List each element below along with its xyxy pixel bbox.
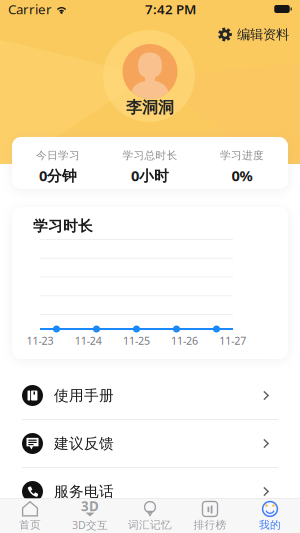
button[interactable]: 词汇记忆 — [120, 499, 180, 533]
staticText: 11-25 — [123, 333, 150, 348]
staticText: 学习时长 — [33, 217, 93, 235]
button[interactable]: 排行榜 — [180, 499, 240, 533]
button[interactable]: 建议反馈 — [12, 420, 288, 467]
staticText: 11-27 — [219, 333, 246, 348]
button[interactable]: 编辑资料 — [218, 25, 300, 43]
staticText: 编辑资料 — [237, 26, 289, 43]
button[interactable]: 3D — [60, 499, 120, 533]
button[interactable]: 首页 — [0, 499, 60, 533]
staticText: 11-23 — [26, 333, 53, 348]
staticText: 0分钟 — [39, 166, 77, 185]
staticText: 首页 — [19, 518, 41, 531]
staticText: 我的 — [259, 518, 281, 531]
staticText: 服务电话 — [54, 482, 114, 500]
button[interactable]: 服务电话 — [12, 468, 288, 515]
staticText: 3D — [81, 497, 99, 515]
staticText: 11-24 — [75, 333, 102, 348]
staticText: 7:42 PM — [145, 0, 196, 18]
staticText: 词汇记忆 — [128, 518, 172, 531]
staticText: Carrier — [8, 0, 52, 18]
button[interactable]: 我的 — [240, 499, 300, 533]
staticText: 今日学习 — [36, 149, 80, 162]
staticText: 使用手册 — [54, 386, 114, 404]
staticText: 建议反馈 — [54, 434, 114, 452]
staticText: 学习总时长 — [122, 149, 177, 162]
staticText: 11-26 — [171, 333, 198, 348]
staticText: 0% — [231, 166, 252, 185]
staticText: 3D交互 — [72, 518, 108, 532]
staticText: 李洞洞 — [126, 98, 174, 117]
button[interactable]: 使用手册 — [12, 372, 288, 419]
staticText: 学习进度 — [220, 149, 264, 162]
staticText: 排行榜 — [193, 518, 226, 531]
staticText: 0小时 — [131, 166, 169, 185]
